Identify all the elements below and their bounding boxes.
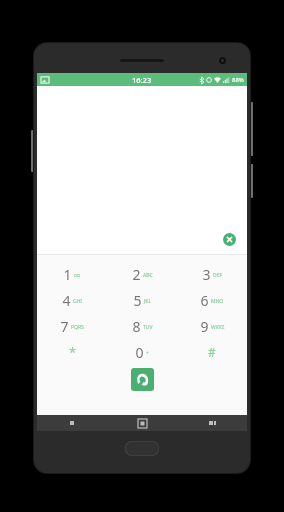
staticText: oo [74, 272, 81, 279]
button[interactable]: 7 [37, 313, 107, 339]
staticText: DEF [213, 272, 223, 279]
staticText: ABC [143, 272, 153, 279]
staticText: 9 [200, 317, 209, 336]
button[interactable]: Call [131, 368, 154, 391]
staticText: 88% [232, 76, 244, 84]
button[interactable]: Recent apps [177, 415, 247, 431]
staticText: 8 [132, 317, 141, 336]
staticText: # [208, 344, 216, 360]
staticText: 4 [62, 291, 71, 310]
button[interactable]: 9 [177, 313, 247, 339]
button[interactable]: 3 [177, 261, 247, 287]
staticText: JKL [144, 298, 152, 305]
button[interactable]: * [37, 339, 107, 365]
button[interactable]: 8 [107, 313, 177, 339]
button[interactable]: # [177, 339, 247, 365]
button[interactable]: 0 [107, 339, 177, 365]
button[interactable]: 1 [37, 261, 107, 287]
staticText: MNO [211, 298, 224, 305]
button[interactable]: Backspace [219, 229, 239, 249]
staticText: PQRS [71, 324, 84, 331]
staticText: * [69, 344, 76, 360]
staticText: TUV [143, 324, 153, 331]
staticText: 6 [200, 291, 209, 310]
staticText: 1 [63, 265, 72, 284]
staticText: 16:23 [132, 75, 152, 85]
button[interactable]: 6 [177, 287, 247, 313]
staticText: 0 [135, 343, 144, 362]
staticText: + [146, 350, 149, 357]
staticText: 5 [133, 291, 142, 310]
staticText: GHI [73, 298, 83, 305]
button[interactable]: Home [107, 415, 177, 431]
staticText: 7 [60, 317, 69, 336]
button[interactable]: Back [37, 415, 107, 431]
staticText: 2 [132, 265, 141, 284]
staticText: 3 [202, 265, 211, 284]
button[interactable]: 2 [107, 261, 177, 287]
button[interactable]: 5 [107, 287, 177, 313]
staticText: WXYZ [211, 324, 225, 331]
button[interactable]: 4 [37, 287, 107, 313]
